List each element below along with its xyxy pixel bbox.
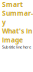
staticText: Smart Summary [2,0,33,27]
staticText: Sub title line here [2,44,31,50]
staticText: What's in image [2,27,32,44]
